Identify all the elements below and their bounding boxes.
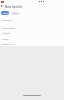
button[interactable]: E-Mail — [2, 38, 9, 41]
button[interactable]: Inaktiv — [11, 11, 20, 15]
button[interactable]: Telefon Nr. — [2, 42, 14, 45]
button[interactable]: Aktiv — [1, 11, 9, 15]
staticText: Nachname — [2, 26, 15, 29]
staticText: New benefit — [5, 5, 22, 8]
staticText: Strasse — [2, 32, 10, 35]
button[interactable]: Strasse — [2, 32, 10, 35]
staticText: Telefon Nr. — [2, 42, 14, 45]
button[interactable]: Nachname — [2, 26, 15, 29]
staticText: Inaktiv — [12, 12, 19, 15]
staticText: Vorname — [2, 19, 12, 22]
button[interactable]: Back — [0, 4, 4, 8]
staticText: Aktiv — [3, 12, 8, 15]
staticText: E-Mail — [2, 38, 9, 41]
button[interactable]: Vorname — [2, 19, 12, 22]
